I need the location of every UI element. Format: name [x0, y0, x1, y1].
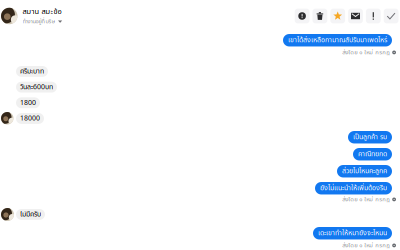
- button[interactable]: Star: [330, 9, 345, 23]
- staticText: เป็นลูกค้า รบ: [353, 132, 387, 142]
- staticText: ส่งโดย ๑ ใหม่ กรกฎ: [342, 48, 390, 57]
- button[interactable]: 18000: [16, 113, 44, 124]
- button[interactable]: เขาได้ส่งเหลือกามาณสัปรับมาเพดไหร่: [283, 34, 392, 46]
- button[interactable]: 1800: [16, 97, 40, 108]
- staticText: ส่งโดย ๑ ใหม่ กรกฎ: [342, 241, 390, 250]
- button[interactable]: เป็นลูกค้า รบ: [348, 131, 392, 143]
- staticText: ไม่มีครับ: [20, 209, 41, 220]
- staticText: ครีมะบาท: [20, 66, 44, 77]
- button[interactable]: Open profile: [1, 112, 13, 124]
- staticText: เดะเขาทำให้หมายังจะไหมน: [318, 228, 387, 238]
- button[interactable]: สมาน สมะข้อ: [0, 6, 62, 26]
- staticText: ยังไม่แนะนำให้เพิ่มต้องรีบ: [320, 183, 387, 193]
- staticText: วันละ600บท: [20, 82, 53, 92]
- staticText: 18000: [20, 113, 40, 124]
- button[interactable]: Delete: [312, 9, 327, 23]
- button[interactable]: เดะเขาทำให้หมายังจะไหมน: [313, 227, 392, 239]
- button[interactable]: Report: [366, 9, 381, 23]
- button[interactable]: วันละ600บท: [16, 82, 57, 93]
- button[interactable]: Mail: [348, 9, 363, 23]
- staticText: ทำงานอยู่ที่ บริษ: [22, 17, 55, 26]
- staticText: 1800: [20, 98, 36, 108]
- staticText: เขาได้ส่งเหลือกามาณสัปรับมาเพดไหร่: [288, 35, 387, 45]
- button[interactable]: Done: [384, 9, 398, 23]
- button[interactable]: ยังไม่แนะนำให้เพิ่มต้องรีบ: [315, 182, 392, 194]
- staticText: ส่งโดย ๑ ใหม่ กรกฎ: [342, 195, 390, 204]
- button[interactable]: Open profile: [1, 208, 14, 221]
- button[interactable]: ส่วยไปไหมคะลูกค: [337, 165, 392, 177]
- button[interactable]: Block: [295, 9, 309, 23]
- button[interactable]: คาณีทยกด: [353, 148, 392, 160]
- staticText: สมาน สมะข้อ: [22, 6, 61, 17]
- button[interactable]: ไม่มีครับ: [16, 209, 45, 220]
- staticText: ส่วยไปไหมคะลูกค: [342, 166, 387, 176]
- staticText: คาณีทยกด: [358, 149, 387, 159]
- button[interactable]: ครีมะบาท: [16, 66, 48, 77]
